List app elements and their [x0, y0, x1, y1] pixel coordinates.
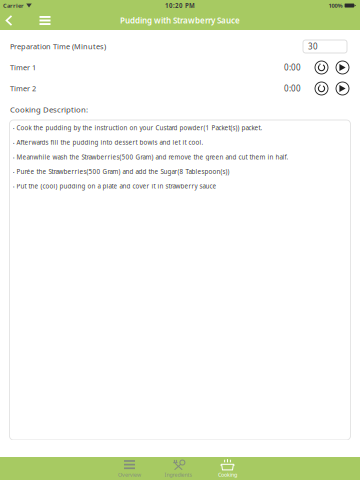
staticText: Cooking	[218, 471, 237, 478]
staticText: - Purée the Strawberries(500 Gram) and a…	[12, 167, 229, 176]
staticText: Pudding with Strawberry Sauce	[120, 15, 240, 26]
button[interactable]: 30	[303, 40, 347, 53]
staticText: Preparation Time (Minutes)	[10, 41, 106, 51]
staticText: 10:20 PM	[165, 1, 195, 10]
staticText: - Afterwards fill the pudding into desse…	[12, 138, 203, 147]
staticText: Overview	[118, 471, 141, 478]
staticText: 100%	[329, 2, 343, 9]
button[interactable]: Start timer	[332, 78, 353, 99]
button[interactable]: Start timer	[332, 57, 353, 78]
button[interactable]: Ingredients	[154, 457, 203, 480]
staticText: - Cook the pudding by the instruction on…	[12, 124, 262, 132]
staticText: Cooking Description:	[10, 104, 88, 115]
staticText: Ingredients	[164, 471, 192, 478]
staticText: - Meanwhile wash the Strawberries(500 Gr…	[12, 153, 288, 161]
staticText: 0:00	[284, 83, 301, 94]
staticText: Timer 2	[10, 83, 36, 93]
button[interactable]: Cooking	[203, 457, 252, 480]
button[interactable]: Back	[0, 11, 18, 30]
button[interactable]: Reset timer	[311, 57, 332, 78]
button[interactable]: Overview	[105, 457, 154, 480]
button[interactable]: Menu	[18, 11, 72, 30]
staticText: Timer 1	[10, 62, 36, 72]
staticText: Carrier	[3, 2, 24, 9]
staticText: - Put the (cool) pudding on a plate and …	[12, 182, 216, 190]
staticText: 30	[308, 41, 318, 52]
button[interactable]: Reset timer	[311, 78, 332, 99]
staticText: 0:00	[284, 62, 301, 73]
